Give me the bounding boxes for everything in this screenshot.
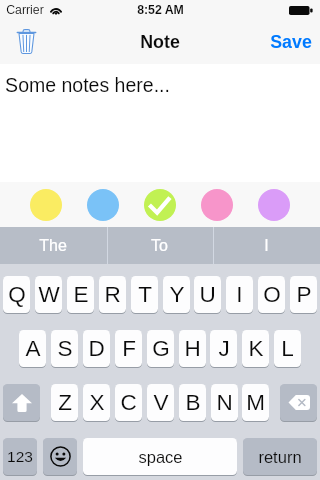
button[interactable]: Z xyxy=(51,384,78,421)
button[interactable]: Colour 5 xyxy=(258,189,290,221)
staticText: D xyxy=(88,336,105,361)
button[interactable]: T xyxy=(131,276,158,313)
button[interactable]: G xyxy=(147,330,174,367)
staticText: 8:52 AM xyxy=(137,3,184,17)
button[interactable]: Delete note xyxy=(0,20,48,64)
button[interactable]: 123 xyxy=(3,438,37,475)
staticText: 123 xyxy=(7,448,33,465)
button[interactable]: Save xyxy=(262,20,320,64)
button[interactable]: The xyxy=(0,227,106,264)
button[interactable]: U xyxy=(194,276,221,313)
staticText: E xyxy=(73,282,89,307)
staticText: Y xyxy=(169,282,185,307)
button[interactable]: C xyxy=(115,384,142,421)
button[interactable]: E xyxy=(67,276,94,313)
button[interactable]: F xyxy=(115,330,142,367)
staticText: L xyxy=(281,336,294,361)
staticText: Q xyxy=(8,282,26,307)
button[interactable]: I xyxy=(226,276,253,313)
button[interactable]: B xyxy=(179,384,206,421)
staticText: Note xyxy=(140,32,180,52)
staticText: U xyxy=(199,282,216,307)
staticText: F xyxy=(122,336,136,361)
button[interactable]: Colour 4 xyxy=(201,189,233,221)
button[interactable]: space xyxy=(83,438,237,475)
button[interactable]: K xyxy=(242,330,269,367)
button[interactable]: P xyxy=(290,276,317,313)
staticText: Z xyxy=(58,390,72,415)
button[interactable]: H xyxy=(179,330,206,367)
button[interactable]: S xyxy=(51,330,78,367)
staticText: N xyxy=(216,390,233,415)
staticText: return xyxy=(258,448,302,466)
staticText: space xyxy=(138,448,183,466)
button[interactable]: To xyxy=(106,227,213,264)
staticText: P xyxy=(296,282,312,307)
button[interactable]: Y xyxy=(163,276,190,313)
button[interactable]: Shift xyxy=(3,384,40,421)
button[interactable]: Backspace xyxy=(280,384,317,421)
staticText: X xyxy=(89,390,105,415)
button[interactable]: O xyxy=(258,276,285,313)
button[interactable]: V xyxy=(147,384,174,421)
staticText: A xyxy=(25,336,41,361)
button[interactable]: D xyxy=(83,330,110,367)
button[interactable]: Emoji keyboard xyxy=(43,438,77,475)
staticText: The xyxy=(39,237,67,255)
staticText: B xyxy=(185,390,201,415)
staticText: H xyxy=(184,336,201,361)
staticText: Some notes here... xyxy=(5,74,170,96)
button[interactable]: R xyxy=(99,276,126,313)
button[interactable]: N xyxy=(211,384,238,421)
staticText: W xyxy=(38,282,60,307)
button[interactable]: I xyxy=(213,227,320,264)
button[interactable]: Colour 3 xyxy=(144,189,176,221)
staticText: M xyxy=(246,390,265,415)
staticText: Carrier xyxy=(6,3,44,17)
staticText: T xyxy=(138,282,152,307)
staticText: O xyxy=(263,282,281,307)
button[interactable]: Colour 1 xyxy=(30,189,62,221)
staticText: C xyxy=(120,390,137,415)
staticText: R xyxy=(104,282,121,307)
button[interactable]: Q xyxy=(3,276,30,313)
staticText: K xyxy=(248,336,264,361)
staticText: S xyxy=(57,336,73,361)
button[interactable]: J xyxy=(210,330,237,367)
button[interactable]: X xyxy=(83,384,110,421)
staticText: G xyxy=(152,336,170,361)
button[interactable]: W xyxy=(35,276,62,313)
staticText: I xyxy=(236,282,243,307)
staticText: I xyxy=(264,237,269,255)
staticText: V xyxy=(153,390,169,415)
button[interactable]: return xyxy=(243,438,317,475)
staticText: To xyxy=(151,237,168,255)
staticText: J xyxy=(218,336,230,361)
button[interactable]: Colour 2 xyxy=(87,189,119,221)
button[interactable]: A xyxy=(19,330,46,367)
staticText: Save xyxy=(270,32,312,52)
button[interactable]: L xyxy=(274,330,301,367)
button[interactable]: M xyxy=(242,384,269,421)
